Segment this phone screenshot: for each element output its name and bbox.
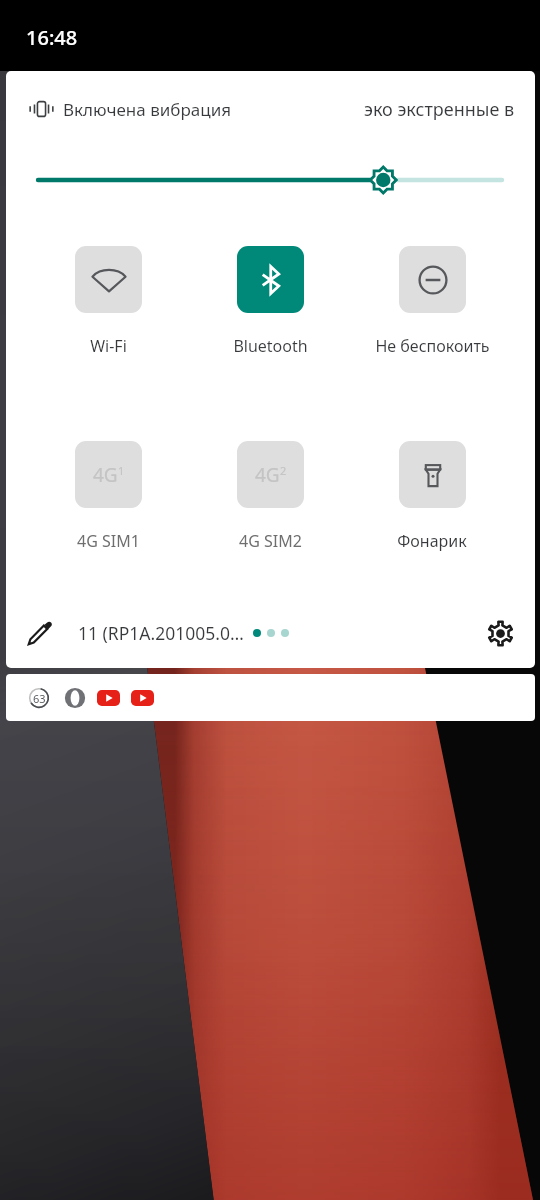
staticText: 4G SIM1 <box>77 530 140 552</box>
staticText: Bluetooth <box>233 335 308 357</box>
staticText: 16:48 <box>26 24 78 51</box>
button[interactable]: Bluetooth <box>189 246 351 357</box>
button[interactable]: Изменить <box>26 618 56 648</box>
staticText: 11 (RP1A.201005.0… <box>78 621 244 645</box>
button[interactable]: 4G <box>189 441 351 552</box>
button[interactable]: Фонарик <box>351 441 513 552</box>
staticText: 63 <box>33 691 46 706</box>
staticText: Не беспокоить <box>375 335 490 357</box>
staticText: эко экстренные в <box>364 97 515 122</box>
staticText: 4G <box>93 462 118 488</box>
staticText: 1 <box>118 463 125 478</box>
staticText: 4G SIM2 <box>239 530 302 552</box>
staticText: Wi-Fi <box>90 335 127 357</box>
button[interactable]: Настройки <box>483 616 517 650</box>
staticText: 4G <box>255 462 280 488</box>
button[interactable]: 63 <box>6 674 535 721</box>
staticText: 2 <box>280 463 287 478</box>
button[interactable]: 4G <box>27 441 189 552</box>
button[interactable]: Не беспокоить <box>351 246 513 357</box>
staticText: Включена вибрация <box>63 98 232 121</box>
button[interactable]: Wi-Fi <box>27 246 189 357</box>
staticText: Фонарик <box>397 530 467 552</box>
